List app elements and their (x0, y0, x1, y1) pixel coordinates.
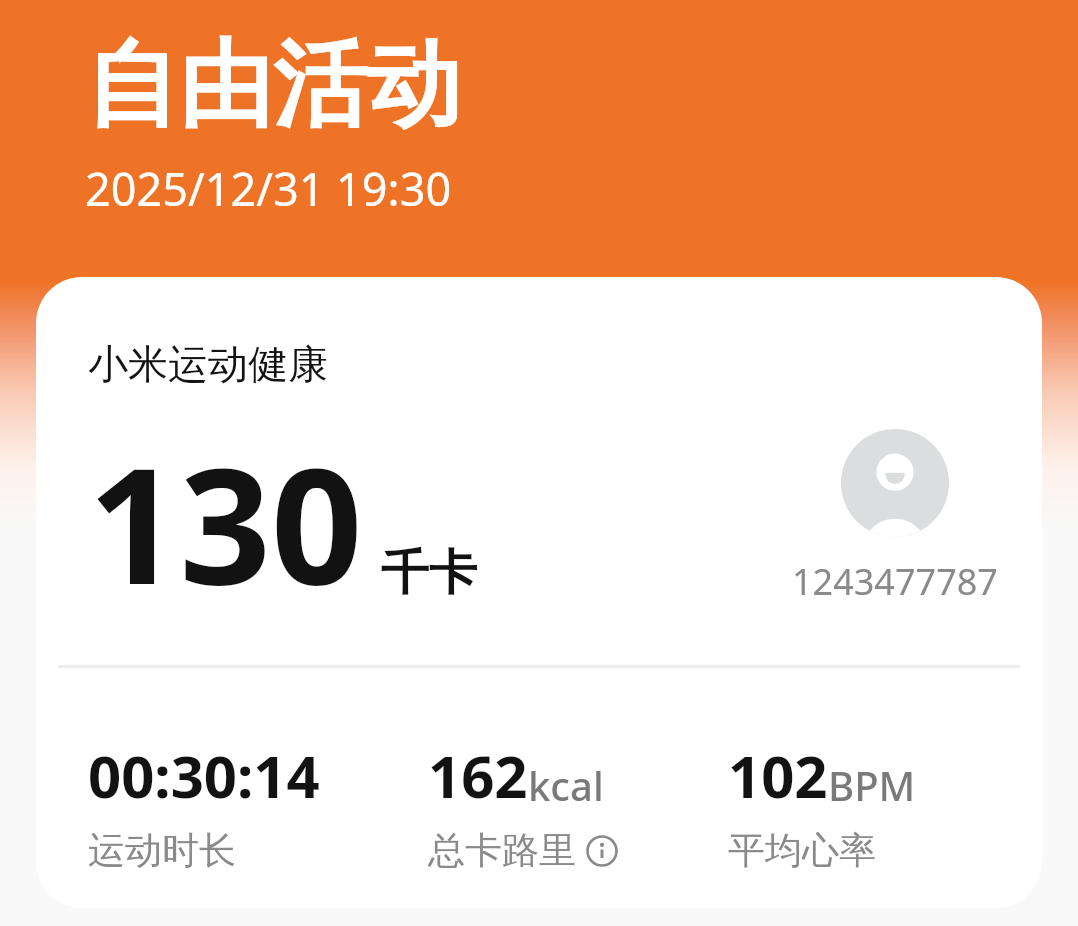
staticText: 平均心率 (728, 827, 876, 874)
staticText: 运动时长 (88, 827, 236, 874)
staticText: 自由活动 (85, 26, 461, 144)
staticText: BPM (828, 758, 916, 812)
button[interactable]: 162 (428, 736, 728, 874)
staticText: kcal (528, 758, 604, 812)
button[interactable]: 00:30:14 (88, 736, 428, 874)
button[interactable]: 小米运动健康 (36, 277, 1042, 908)
button[interactable]: Calorie info (586, 835, 618, 867)
staticText: 总卡路里 (428, 827, 576, 874)
staticText: 102 (728, 736, 828, 815)
staticText: 2025/12/31 19:30 (85, 158, 452, 219)
staticText: 130 (88, 413, 363, 631)
staticText: 千卡 (381, 543, 477, 603)
button[interactable]: Profile avatar (841, 429, 949, 537)
staticText: 1243477787 (792, 557, 998, 606)
staticText: 162 (428, 736, 528, 815)
staticText: 小米运动健康 (88, 339, 328, 389)
staticText: 00:30:14 (88, 736, 320, 815)
button[interactable]: 102 (728, 736, 1008, 874)
